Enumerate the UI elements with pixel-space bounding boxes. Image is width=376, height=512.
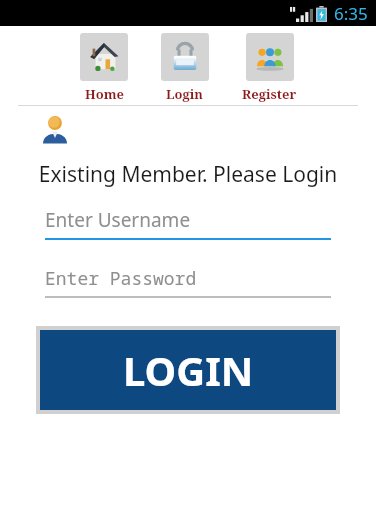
- staticText: Existing Member. Please Login: [0, 160, 376, 189]
- button[interactable]: Register: [240, 33, 299, 103]
- button[interactable]: LOGIN: [40, 330, 336, 410]
- staticText: Enter Password: [45, 266, 197, 291]
- staticText: Home: [85, 85, 124, 103]
- staticText: Enter Username: [45, 207, 191, 233]
- button[interactable]: Enter Username: [45, 207, 331, 240]
- staticText: Login: [166, 85, 204, 103]
- button[interactable]: Home: [78, 33, 130, 103]
- staticText: LOGIN: [123, 343, 254, 397]
- button[interactable]: Enter Password: [45, 266, 331, 298]
- button[interactable]: Login: [159, 33, 211, 103]
- staticText: 6:35: [334, 2, 368, 25]
- staticText: Register: [242, 85, 297, 103]
